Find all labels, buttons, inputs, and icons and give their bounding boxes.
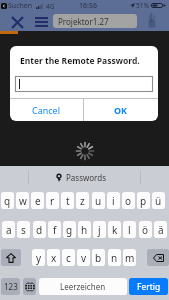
button[interactable]: a: [2, 221, 15, 238]
button[interactable]: y: [32, 249, 45, 266]
button[interactable]: r: [46, 192, 59, 209]
staticText: Leerzeichen: [60, 281, 106, 292]
staticText: j: [98, 223, 101, 237]
button[interactable]: ä: [154, 221, 167, 238]
staticText: r: [50, 194, 55, 208]
staticText: Cancel: [32, 104, 61, 116]
button[interactable]: Menu: [32, 13, 50, 31]
button[interactable]: i: [107, 192, 120, 209]
button[interactable]: Close: [9, 14, 26, 31]
button[interactable]: b: [92, 249, 105, 266]
button[interactable]: u: [92, 192, 105, 209]
staticText: 16:56: [79, 1, 97, 11]
button[interactable]: j: [93, 221, 106, 238]
staticText: Enter the Remote Password.: [20, 55, 140, 67]
button[interactable]: k: [108, 221, 121, 238]
staticText: u: [95, 194, 102, 208]
button[interactable]: ö: [139, 221, 152, 238]
staticText: d: [36, 223, 43, 237]
staticText: q: [4, 194, 11, 208]
button[interactable]: x: [47, 249, 60, 266]
button[interactable]: Projektor1.27: [53, 14, 137, 28]
staticText: 123: [4, 281, 18, 292]
staticText: o: [125, 194, 132, 208]
button[interactable]: o: [122, 192, 135, 209]
staticText: l: [128, 223, 131, 237]
staticText: Fertig: [137, 281, 161, 293]
staticText: 51%: [136, 1, 149, 10]
button[interactable]: z: [76, 192, 89, 209]
button[interactable]: e: [31, 192, 44, 209]
button[interactable]: 123: [1, 278, 20, 295]
staticText: i: [112, 194, 115, 208]
staticText: k: [112, 223, 118, 237]
button[interactable]: t: [61, 192, 74, 209]
button[interactable]: h: [78, 221, 91, 238]
staticText: b: [95, 251, 102, 265]
button[interactable]: q: [1, 192, 14, 209]
button[interactable]: Leerzeichen: [39, 278, 127, 295]
button[interactable]: Fertig: [129, 278, 168, 295]
staticText: v: [81, 251, 87, 265]
staticText: c: [66, 251, 71, 265]
staticText: Suchen: [8, 1, 33, 11]
staticText: y: [36, 251, 42, 265]
staticText: e: [35, 194, 41, 208]
button[interactable]: m: [123, 249, 136, 266]
staticText: OK: [114, 104, 128, 116]
button[interactable]: n: [108, 249, 121, 266]
staticText: Projektor1.27: [58, 16, 109, 27]
staticText: n: [111, 251, 118, 265]
button[interactable]: OK: [84, 99, 158, 121]
staticText: p: [140, 194, 147, 208]
staticText: m: [125, 251, 135, 265]
staticText: g: [66, 223, 73, 237]
staticText: w: [19, 194, 27, 208]
button[interactable]: c: [62, 249, 75, 266]
button[interactable]: Change keyboard: [23, 278, 36, 295]
staticText: f: [53, 223, 57, 237]
button[interactable]: Passwords: [55, 170, 107, 185]
button[interactable]: v: [77, 249, 90, 266]
staticText: ö: [142, 223, 149, 237]
staticText: ü: [155, 194, 162, 208]
staticText: z: [80, 194, 85, 208]
button[interactable]: g: [63, 221, 76, 238]
staticText: h: [81, 223, 88, 237]
staticText: x: [51, 251, 57, 265]
button[interactable]: ü: [152, 192, 165, 209]
staticText: ä: [158, 223, 164, 237]
staticText: s: [21, 223, 26, 237]
staticText: a: [6, 223, 12, 237]
button[interactable]: l: [123, 221, 136, 238]
button[interactable]: f: [48, 221, 61, 238]
button[interactable]: Cancel: [10, 99, 83, 121]
staticText: Passwords: [66, 172, 107, 183]
button[interactable]: Backspace: [147, 249, 169, 266]
staticText: 4G: [46, 2, 55, 11]
staticText: t: [66, 194, 70, 208]
button[interactable]: Shift: [1, 249, 21, 266]
button[interactable]: w: [16, 192, 29, 209]
button[interactable]: p: [137, 192, 150, 209]
button[interactable]: d: [33, 221, 46, 238]
button[interactable]: s: [17, 221, 30, 238]
